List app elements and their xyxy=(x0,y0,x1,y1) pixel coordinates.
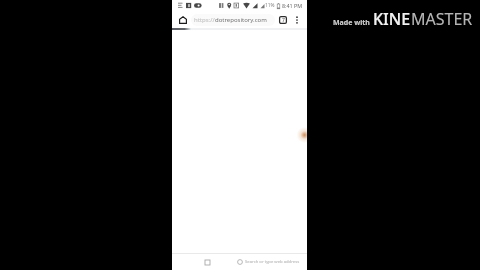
staticText: KINE xyxy=(373,8,411,30)
staticText: MASTER xyxy=(411,8,473,30)
button[interactable]: https:// xyxy=(191,14,275,26)
button[interactable]: Switch tabs xyxy=(276,13,290,27)
staticText: Search or type web address xyxy=(245,259,300,265)
button[interactable]: Search or type web address xyxy=(237,259,300,265)
button[interactable]: Home xyxy=(175,12,191,28)
staticText: https:// xyxy=(194,16,215,24)
staticText: 8:41 PM xyxy=(282,2,303,9)
staticText: 11% xyxy=(265,2,275,9)
staticText: 7 xyxy=(282,17,285,24)
staticText: Made with xyxy=(333,18,370,28)
button[interactable]: Recent apps xyxy=(201,256,213,268)
button[interactable]: More options xyxy=(290,13,304,27)
staticText: dotrepository.com xyxy=(215,16,267,24)
